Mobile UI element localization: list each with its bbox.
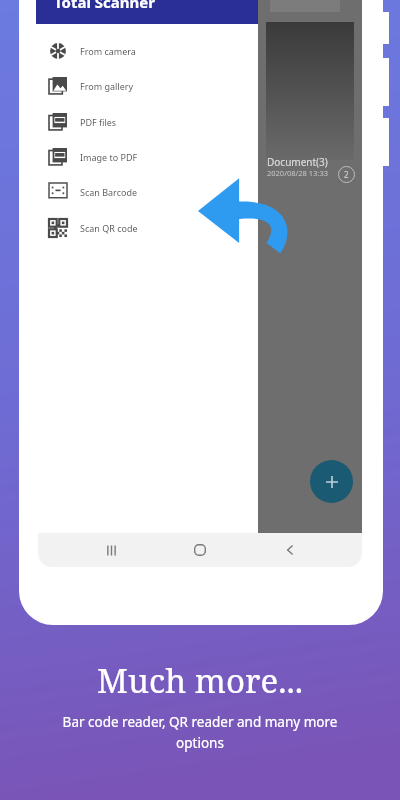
staticText: From camera — [80, 45, 136, 57]
staticText: 2 — [344, 169, 349, 180]
button[interactable]: Scan Barcode — [36, 174, 258, 209]
button[interactable]: Image to PDF — [36, 139, 258, 174]
staticText: From gallery — [80, 80, 134, 92]
button[interactable]: Add document — [310, 460, 353, 503]
button[interactable]: Back — [273, 533, 307, 567]
staticText: PDF files — [80, 116, 117, 128]
staticText: Document(3) — [267, 155, 328, 169]
staticText: Bar code reader, QR reader and many more… — [50, 713, 350, 752]
staticText: Much more... — [97, 658, 303, 703]
staticText: Scan Barcode — [80, 186, 138, 198]
staticText: Total Scanner — [54, 0, 155, 12]
button[interactable]: Recent apps — [94, 533, 128, 567]
button[interactable]: Home — [183, 533, 217, 567]
staticText: 2020/08/28 13:33 — [267, 168, 329, 178]
button[interactable]: Scan QR code — [36, 210, 258, 245]
button[interactable]: PDF files — [36, 104, 258, 139]
staticText: Image to PDF — [80, 151, 138, 163]
button[interactable]: From gallery — [36, 68, 258, 103]
button[interactable]: From camera — [36, 33, 258, 68]
staticText: Scan QR code — [80, 222, 138, 234]
